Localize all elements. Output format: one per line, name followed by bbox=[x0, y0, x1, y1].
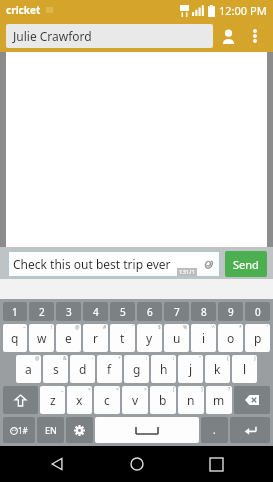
button[interactable]: m bbox=[206, 386, 232, 414]
staticText: x bbox=[76, 392, 83, 408]
staticText: g bbox=[133, 361, 141, 377]
staticText: cricket bbox=[6, 3, 41, 17]
staticText: s bbox=[53, 361, 59, 377]
button[interactable]: Enter bbox=[230, 417, 270, 443]
button[interactable]: 8 bbox=[191, 302, 216, 321]
staticText: + bbox=[118, 355, 121, 362]
button[interactable]: Recent apps bbox=[194, 446, 238, 482]
staticText: @ bbox=[75, 324, 80, 331]
staticText: [ bbox=[173, 386, 175, 393]
button[interactable]: n bbox=[178, 386, 204, 414]
staticText: Check this out best trip ever bbox=[13, 256, 171, 272]
button[interactable]: 0 bbox=[245, 302, 270, 321]
button[interactable]: i bbox=[191, 324, 216, 352]
staticText: Julie Crawford bbox=[13, 28, 92, 44]
staticText: 1 bbox=[12, 305, 18, 319]
staticText: n bbox=[187, 392, 195, 408]
staticText: ) bbox=[254, 355, 256, 362]
staticText: ( bbox=[227, 355, 229, 362]
button[interactable]: a bbox=[16, 355, 41, 383]
button[interactable]: o bbox=[218, 324, 243, 352]
staticText: m bbox=[213, 392, 225, 408]
staticText: 1# bbox=[18, 425, 28, 436]
button[interactable]: Backspace bbox=[234, 386, 270, 414]
button[interactable]: 6 bbox=[137, 302, 162, 321]
button[interactable]: h bbox=[151, 355, 176, 383]
button[interactable]: Attach bbox=[197, 253, 219, 275]
staticText: t bbox=[120, 330, 125, 346]
staticText: > bbox=[144, 386, 147, 393]
button[interactable]: j bbox=[178, 355, 203, 383]
button[interactable]: Check this out best trip ever bbox=[9, 252, 219, 276]
button[interactable]: w bbox=[29, 324, 54, 352]
staticText: y bbox=[146, 330, 153, 346]
button[interactable]: q bbox=[3, 324, 27, 352]
button[interactable]: EN bbox=[37, 417, 64, 443]
button[interactable]: t bbox=[110, 324, 135, 352]
button[interactable]: . bbox=[201, 417, 228, 443]
staticText: h bbox=[160, 361, 168, 377]
button[interactable]: 9 bbox=[218, 302, 243, 321]
button[interactable]: 3 bbox=[56, 302, 81, 321]
staticText: 7 bbox=[174, 305, 180, 319]
button[interactable]: z bbox=[40, 386, 65, 414]
button[interactable]: Shift bbox=[3, 386, 38, 414]
staticText: r bbox=[93, 330, 98, 346]
button[interactable]: e bbox=[56, 324, 81, 352]
button[interactable]: s bbox=[43, 355, 68, 383]
staticText: l bbox=[243, 361, 247, 377]
button[interactable]: 2 bbox=[29, 302, 54, 321]
button[interactable]: v bbox=[122, 386, 148, 414]
button[interactable]: r bbox=[83, 324, 108, 352]
button[interactable]: c bbox=[94, 386, 120, 414]
staticText: 2 bbox=[39, 305, 45, 319]
staticText: 0 bbox=[255, 305, 261, 319]
staticText: 131/1 bbox=[179, 268, 195, 276]
staticText: q bbox=[11, 330, 19, 346]
button[interactable]: l bbox=[232, 355, 257, 383]
staticText: ? bbox=[228, 386, 231, 393]
staticText: ~ bbox=[23, 324, 26, 331]
button[interactable]: Send bbox=[225, 251, 267, 277]
button[interactable]: p bbox=[245, 324, 270, 352]
button[interactable]: Contacts bbox=[213, 21, 243, 51]
staticText: ` bbox=[132, 324, 134, 331]
staticText: % bbox=[183, 324, 188, 331]
staticText: : bbox=[146, 355, 148, 362]
button[interactable]: 1 bbox=[3, 302, 27, 321]
staticText: 6 bbox=[147, 305, 153, 319]
button[interactable]: Settings bbox=[66, 417, 93, 443]
button[interactable]: Home bbox=[115, 446, 159, 482]
button[interactable]: Symbols bbox=[3, 417, 35, 443]
staticText: a bbox=[25, 361, 32, 377]
staticText: e bbox=[65, 330, 72, 346]
button[interactable]: 7 bbox=[164, 302, 189, 321]
button[interactable]: f bbox=[97, 355, 122, 383]
button[interactable]: u bbox=[164, 324, 189, 352]
staticText: f bbox=[107, 361, 112, 377]
staticText: " bbox=[199, 355, 202, 362]
button[interactable]: b bbox=[150, 386, 176, 414]
button[interactable]: Space bbox=[95, 417, 199, 443]
staticText: v bbox=[132, 392, 139, 408]
staticText: & bbox=[63, 355, 67, 362]
staticText: p bbox=[254, 330, 262, 346]
button[interactable]: Back bbox=[35, 446, 79, 482]
staticText: Send bbox=[233, 257, 259, 272]
staticText: $ bbox=[158, 324, 161, 331]
button[interactable]: g bbox=[124, 355, 149, 383]
staticText: . bbox=[213, 423, 216, 437]
button[interactable]: 4 bbox=[83, 302, 108, 321]
button[interactable]: x bbox=[67, 386, 92, 414]
button[interactable]: 5 bbox=[110, 302, 135, 321]
staticText: z bbox=[50, 392, 56, 408]
button[interactable]: k bbox=[205, 355, 230, 383]
staticText: k bbox=[214, 361, 221, 377]
staticText: @ bbox=[35, 355, 40, 362]
staticText: c bbox=[104, 392, 110, 408]
staticText: 5 bbox=[120, 305, 126, 319]
button[interactable]: y bbox=[137, 324, 162, 352]
button[interactable]: Julie Crawford bbox=[6, 24, 213, 48]
button[interactable]: More options bbox=[243, 24, 267, 48]
button[interactable]: d bbox=[70, 355, 95, 383]
